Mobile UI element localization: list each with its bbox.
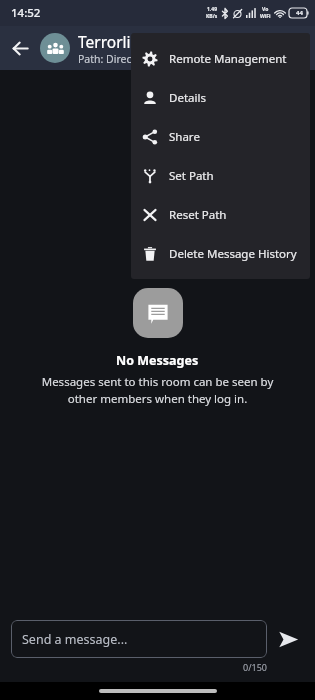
staticText: 0/150 [243, 661, 267, 673]
button[interactable]: Remote Management [131, 39, 310, 78]
staticText: Vo [262, 6, 269, 13]
staticText: Send a message... [22, 631, 128, 648]
button[interactable]: Delete Message History [131, 234, 310, 273]
staticText: 1.49 [207, 6, 217, 13]
staticText: 44 [296, 9, 303, 17]
button[interactable]: Details [131, 78, 310, 117]
staticText: 14:52 [11, 5, 41, 21]
staticText: Path: Direct [78, 52, 136, 66]
button[interactable]: Set Path [131, 156, 310, 195]
button[interactable]: Room avatar [40, 33, 70, 63]
staticText: KB/s [206, 13, 218, 20]
staticText: Messages sent to this room can be seen b… [26, 374, 289, 406]
staticText: Terrorlir [78, 31, 137, 52]
staticText: Details [169, 90, 206, 106]
staticText: WiFi [260, 13, 271, 20]
staticText: Share [169, 129, 200, 145]
button[interactable]: Send [267, 620, 309, 658]
staticText: No Messages [116, 352, 199, 369]
button[interactable]: Share [131, 117, 310, 156]
button[interactable]: Send a message... [11, 620, 267, 658]
staticText: Reset Path [169, 207, 227, 223]
staticText: Delete Message History [169, 246, 297, 262]
staticText: Set Path [169, 168, 214, 184]
button[interactable]: Reset Path [131, 195, 310, 234]
button[interactable]: Back [0, 28, 40, 68]
staticText: Remote Management [169, 51, 287, 67]
